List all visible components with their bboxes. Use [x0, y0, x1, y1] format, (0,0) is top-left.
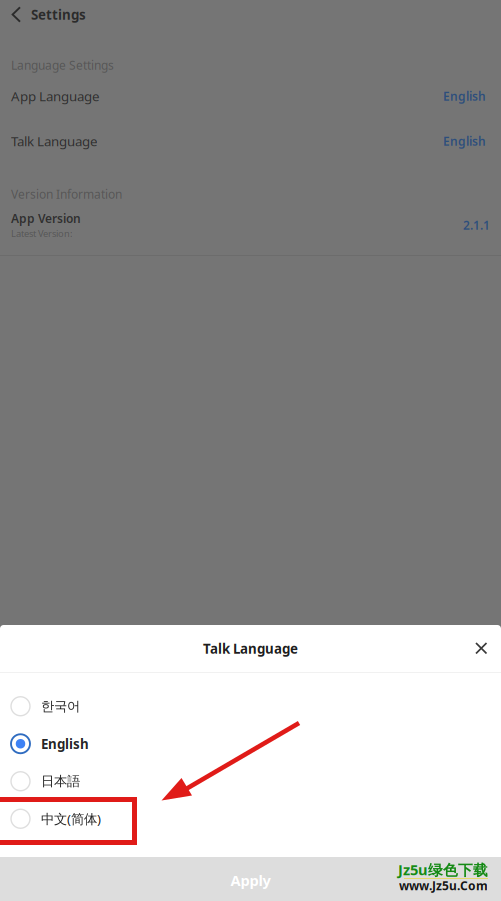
staticText: 2.1.1 [463, 217, 490, 233]
staticText: Talk Language [203, 640, 298, 657]
staticText: 日本語 [41, 773, 80, 789]
staticText: App Version [11, 210, 81, 226]
staticText: 한국어 [41, 698, 80, 714]
staticText: English [41, 735, 89, 753]
button[interactable]: English [0, 725, 501, 762]
staticText: Talk Language [11, 132, 98, 150]
button[interactable]: App Language [0, 81, 501, 111]
staticText: English [443, 133, 486, 149]
staticText: App Language [11, 87, 100, 105]
button[interactable]: 한국어 [0, 687, 501, 725]
button[interactable]: Talk Language [0, 126, 501, 156]
staticText: Apply [230, 870, 270, 890]
button[interactable]: Back [0, 0, 31, 29]
button[interactable]: Close [462, 630, 501, 667]
staticText: www.Jz5u.Com [399, 877, 488, 893]
staticText: 中文(简体) [41, 810, 101, 828]
staticText: Version Information [11, 186, 122, 202]
staticText: Language Settings [11, 57, 114, 73]
button[interactable]: 日本語 [0, 762, 501, 800]
button[interactable]: Apply [0, 857, 501, 901]
button[interactable]: 中文(简体) [0, 800, 501, 837]
staticText: Latest Version: [11, 227, 73, 240]
staticText: English [443, 88, 486, 104]
staticText: Settings [31, 6, 86, 23]
staticText: Jz5u绿色下载 [398, 860, 488, 879]
